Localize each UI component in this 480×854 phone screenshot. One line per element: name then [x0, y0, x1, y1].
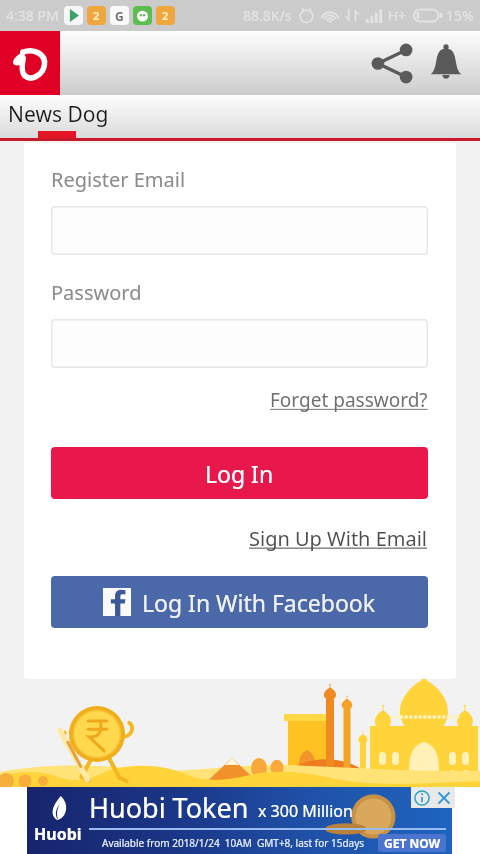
- staticText: Huobi: [34, 823, 82, 845]
- button[interactable]: Ad info: [411, 787, 433, 808]
- staticText: News Dog: [8, 100, 109, 129]
- staticText: H+: [388, 6, 407, 25]
- staticText: GET NOW: [384, 835, 441, 851]
- button[interactable]: Text field: [51, 206, 428, 255]
- button[interactable]: Log In: [51, 447, 428, 499]
- staticText: x 300 Million: [258, 800, 353, 822]
- button[interactable]: Sign Up With Email: [249, 525, 428, 552]
- button[interactable]: Share: [366, 37, 418, 89]
- staticText: Password: [51, 279, 142, 306]
- staticText: 2: [162, 8, 169, 23]
- button[interactable]: Log In With Facebook: [51, 576, 428, 628]
- button[interactable]: Forget password?: [270, 387, 428, 413]
- button[interactable]: NewsDog: [0, 31, 60, 95]
- staticText: Register Email: [51, 166, 186, 193]
- button[interactable]: Close ad: [433, 787, 455, 808]
- button[interactable]: News Dog: [0, 95, 480, 141]
- staticText: 88.8K/s: [243, 6, 292, 25]
- button[interactable]: Text field: [51, 319, 428, 368]
- staticText: 15%: [446, 6, 474, 25]
- staticText: G: [115, 8, 124, 24]
- staticText: 2: [93, 8, 100, 23]
- staticText: Available from 2018/1/24 10AM GMT+8, las…: [102, 836, 365, 850]
- button[interactable]: GET NOW: [378, 834, 446, 852]
- staticText: 4:38 PM: [6, 6, 59, 25]
- button[interactable]: Notifications: [420, 37, 472, 89]
- staticText: Log In With Facebook: [142, 587, 376, 618]
- staticText: Log In: [205, 458, 274, 489]
- staticText: Huobi Token: [89, 789, 249, 826]
- button[interactable]: Huobi: [27, 787, 452, 854]
